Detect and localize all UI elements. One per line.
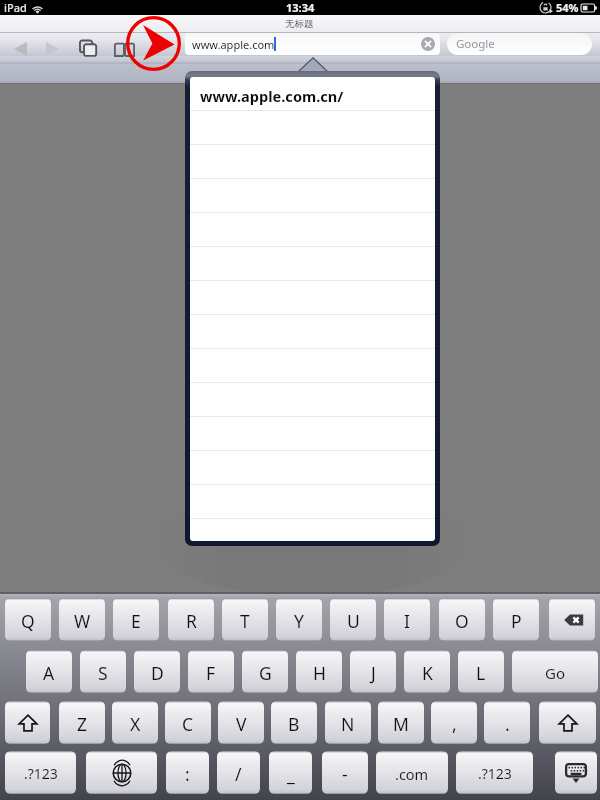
button[interactable]: .com xyxy=(376,751,448,794)
button[interactable]: X xyxy=(112,701,158,744)
button[interactable] xyxy=(190,315,435,349)
staticText: B xyxy=(288,712,300,736)
button[interactable] xyxy=(190,247,435,281)
button[interactable]: Q xyxy=(5,598,51,641)
button[interactable] xyxy=(190,281,435,315)
staticText: / xyxy=(235,762,242,786)
button[interactable]: Clear xyxy=(421,37,435,51)
button[interactable] xyxy=(190,213,435,247)
button[interactable]: H xyxy=(296,650,342,693)
staticText: H xyxy=(313,661,326,685)
staticText: A xyxy=(43,661,55,685)
button[interactable]: / xyxy=(217,751,260,794)
button[interactable] xyxy=(190,519,435,541)
button[interactable]: . xyxy=(484,701,530,744)
staticText: D xyxy=(151,661,164,685)
button[interactable]: T xyxy=(222,598,268,641)
staticText: .?123 xyxy=(24,764,58,783)
button[interactable]: Back xyxy=(7,37,33,61)
staticText: www.apple.com xyxy=(192,37,275,52)
staticText: S xyxy=(98,661,108,685)
staticText: V xyxy=(236,712,247,736)
staticText: K xyxy=(422,661,433,685)
button[interactable]: : xyxy=(166,751,209,794)
button[interactable]: A xyxy=(26,650,72,693)
button[interactable]: W xyxy=(59,598,105,641)
button[interactable]: S xyxy=(80,650,126,693)
button[interactable]: Y xyxy=(276,598,322,641)
button[interactable]: www.apple.com xyxy=(185,33,440,55)
button[interactable]: V xyxy=(218,701,264,744)
button[interactable]: Forward xyxy=(39,37,65,61)
staticText: N xyxy=(341,712,355,736)
staticText: I xyxy=(404,609,410,633)
staticText: R xyxy=(186,609,197,633)
button[interactable]: Bookmarks xyxy=(111,36,137,62)
button[interactable] xyxy=(190,485,435,519)
button[interactable]: Backspace xyxy=(549,598,595,641)
button[interactable]: Z xyxy=(59,701,105,744)
button[interactable] xyxy=(190,145,435,179)
staticText: X xyxy=(130,712,141,736)
button[interactable]: D xyxy=(134,650,180,693)
staticText: Z xyxy=(77,712,88,736)
button[interactable] xyxy=(190,417,435,451)
staticText: O xyxy=(455,609,469,633)
staticText: Y xyxy=(294,609,304,633)
staticText: .?123 xyxy=(478,764,512,783)
staticText: M xyxy=(393,712,409,736)
staticText: , xyxy=(452,712,457,736)
staticText: iPad xyxy=(4,0,27,15)
button[interactable]: Shift xyxy=(539,701,596,744)
button[interactable] xyxy=(190,383,435,417)
staticText: F xyxy=(206,661,216,685)
button[interactable]: Shift xyxy=(5,701,50,744)
button[interactable]: E xyxy=(113,598,159,641)
button[interactable]: .?123 xyxy=(5,751,76,794)
button[interactable]: M xyxy=(378,701,424,744)
staticText: www.apple.com.cn/ xyxy=(200,86,344,106)
button[interactable] xyxy=(190,111,435,145)
staticText: Google xyxy=(456,36,495,52)
staticText: - xyxy=(342,762,348,786)
button[interactable]: Google xyxy=(447,33,592,55)
staticText: _ xyxy=(287,762,295,786)
staticText: U xyxy=(347,609,360,633)
button[interactable]: F xyxy=(188,650,234,693)
staticText: E xyxy=(131,609,141,633)
button[interactable]: N xyxy=(325,701,371,744)
button[interactable]: Change keyboard xyxy=(86,751,157,794)
button[interactable]: B xyxy=(271,701,317,744)
button[interactable]: U xyxy=(330,598,376,641)
button[interactable]: C xyxy=(165,701,211,744)
staticText: P xyxy=(511,609,522,633)
button[interactable] xyxy=(190,179,435,213)
staticText: J xyxy=(371,661,376,685)
button[interactable]: L xyxy=(458,650,504,693)
button[interactable] xyxy=(190,451,435,485)
button[interactable]: I xyxy=(384,598,430,641)
button[interactable]: J xyxy=(350,650,396,693)
button[interactable]: _ xyxy=(269,751,312,794)
button[interactable]: P xyxy=(493,598,539,641)
button[interactable]: www.apple.com.cn/ xyxy=(190,77,435,111)
button[interactable]: , xyxy=(431,701,477,744)
button[interactable]: R xyxy=(168,598,214,641)
button[interactable]: Tabs xyxy=(75,36,101,62)
staticText: 54% xyxy=(556,0,579,15)
staticText: G xyxy=(259,661,272,685)
button[interactable]: - xyxy=(322,751,368,794)
button[interactable]: Go xyxy=(512,650,598,693)
staticText: C xyxy=(182,712,194,736)
staticText: Q xyxy=(21,609,35,633)
button[interactable]: K xyxy=(404,650,450,693)
staticText: T xyxy=(240,609,250,633)
button[interactable]: O xyxy=(439,598,485,641)
button[interactable]: .?123 xyxy=(456,751,533,794)
staticText: Go xyxy=(545,663,565,683)
staticText: W xyxy=(74,609,91,633)
button[interactable]: Hide keyboard xyxy=(555,751,597,794)
button[interactable]: G xyxy=(242,650,288,693)
button[interactable] xyxy=(190,349,435,383)
staticText: 13:34 xyxy=(286,0,315,15)
